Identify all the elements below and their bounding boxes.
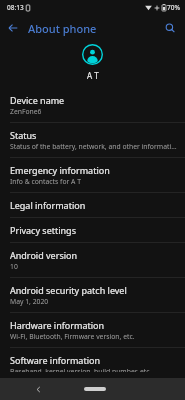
staticText: A T [87, 70, 99, 81]
button[interactable]: Hardware information [0, 313, 185, 347]
button[interactable]: Navigate up [2, 17, 24, 39]
staticText: Status of the battery, network, and othe… [10, 142, 177, 151]
staticText: Status [10, 129, 37, 141]
staticText: Baseband, kernel version, build number, … [10, 367, 152, 372]
button[interactable]: Legal information [0, 193, 185, 217]
button[interactable]: Home [82, 379, 108, 399]
button[interactable]: Emergency information [0, 158, 185, 192]
staticText: Software information [10, 354, 100, 366]
staticText: Android version [10, 249, 78, 261]
staticText: 70% [167, 3, 180, 12]
staticText: May 1, 2020 [10, 297, 49, 306]
staticText: ZenFone6 [10, 107, 42, 116]
staticText: Hardware information [10, 319, 105, 331]
staticText: 10 [10, 262, 18, 271]
button[interactable]: Android version [0, 243, 185, 277]
button[interactable]: Device name [0, 88, 185, 122]
staticText: Android security patch level [10, 284, 127, 296]
staticText: 08:13 [7, 3, 24, 12]
staticText: Wi-Fi, Bluetooth, Firmware version, etc. [10, 332, 135, 341]
staticText: Legal information [10, 199, 86, 211]
staticText: Privacy settings [10, 224, 76, 236]
button[interactable]: Search [159, 17, 181, 39]
button[interactable]: Android security patch level [0, 278, 185, 312]
staticText: Emergency information [10, 164, 110, 176]
staticText: Device name [10, 94, 65, 106]
button[interactable]: Status [0, 123, 185, 157]
staticText: About phone [28, 21, 97, 36]
staticText: Info & contacts for A T [10, 177, 81, 186]
button[interactable]: Privacy settings [0, 218, 185, 242]
button[interactable]: Back [28, 379, 48, 399]
button[interactable]: Software information [0, 348, 185, 378]
